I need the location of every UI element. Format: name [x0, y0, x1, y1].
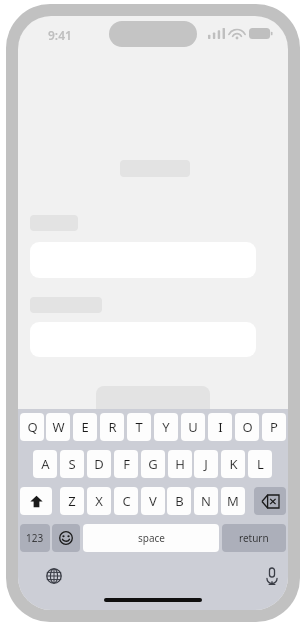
button[interactable] [96, 386, 210, 420]
button[interactable]: R [100, 413, 124, 441]
staticText: return [239, 531, 269, 545]
staticText: Z [68, 492, 76, 510]
button[interactable]: F [114, 450, 138, 478]
staticText: I [218, 418, 223, 436]
staticText: U [188, 418, 198, 436]
staticText: J [204, 455, 208, 473]
button[interactable]: C [114, 487, 138, 515]
staticText: Q [27, 418, 38, 436]
button[interactable]: Emoji [52, 524, 80, 552]
button[interactable]: Shift [20, 487, 52, 515]
button[interactable]: V [141, 487, 165, 515]
staticText: O [242, 418, 253, 436]
staticText: Y [162, 418, 170, 436]
staticText: 123 [26, 531, 44, 545]
button[interactable]: Q [20, 413, 44, 441]
staticText: W [52, 418, 65, 436]
button[interactable]: K [221, 450, 245, 478]
button[interactable]: J [194, 450, 218, 478]
button[interactable]: Y [154, 413, 178, 441]
staticText: E [81, 418, 89, 436]
button[interactable]: U [181, 413, 205, 441]
staticText: G [148, 455, 158, 473]
staticText: B [175, 492, 184, 510]
button[interactable]: W [46, 413, 70, 441]
button[interactable]: S [60, 450, 84, 478]
staticText: T [135, 418, 143, 436]
button[interactable]: 123 [20, 524, 50, 552]
button[interactable]: L [248, 450, 272, 478]
staticText: K [229, 455, 238, 473]
button[interactable]: P [262, 413, 286, 441]
button[interactable]: T [127, 413, 151, 441]
button[interactable]: Switch keyboard [42, 564, 66, 588]
button[interactable]: Delete [254, 487, 286, 515]
staticText: V [149, 492, 157, 510]
button[interactable]: M [221, 487, 245, 515]
staticText: F [123, 455, 130, 473]
button[interactable]: A [33, 450, 57, 478]
button[interactable]: E [73, 413, 97, 441]
button[interactable]: D [87, 450, 111, 478]
button[interactable]: X [87, 487, 111, 515]
staticText: A [41, 455, 50, 473]
button[interactable]: O [235, 413, 259, 441]
staticText: C [122, 492, 131, 510]
button[interactable]: I [208, 413, 232, 441]
button[interactable]: Z [60, 487, 84, 515]
staticText: R [108, 418, 117, 436]
staticText: S [68, 455, 76, 473]
button[interactable]: B [167, 487, 191, 515]
staticText: P [270, 418, 278, 436]
staticText: space [138, 531, 165, 545]
staticText: M [227, 492, 239, 510]
staticText: D [94, 455, 104, 473]
staticText: X [95, 492, 103, 510]
button[interactable]: return [222, 524, 286, 552]
staticText: H [175, 455, 185, 473]
staticText: L [257, 455, 264, 473]
button[interactable]: G [141, 450, 165, 478]
button[interactable]: Dictation [260, 564, 284, 588]
button[interactable]: H [168, 450, 192, 478]
staticText: 9:41 [48, 27, 72, 43]
button[interactable]: space [83, 524, 219, 552]
staticText: N [201, 492, 211, 510]
button[interactable]: N [194, 487, 218, 515]
